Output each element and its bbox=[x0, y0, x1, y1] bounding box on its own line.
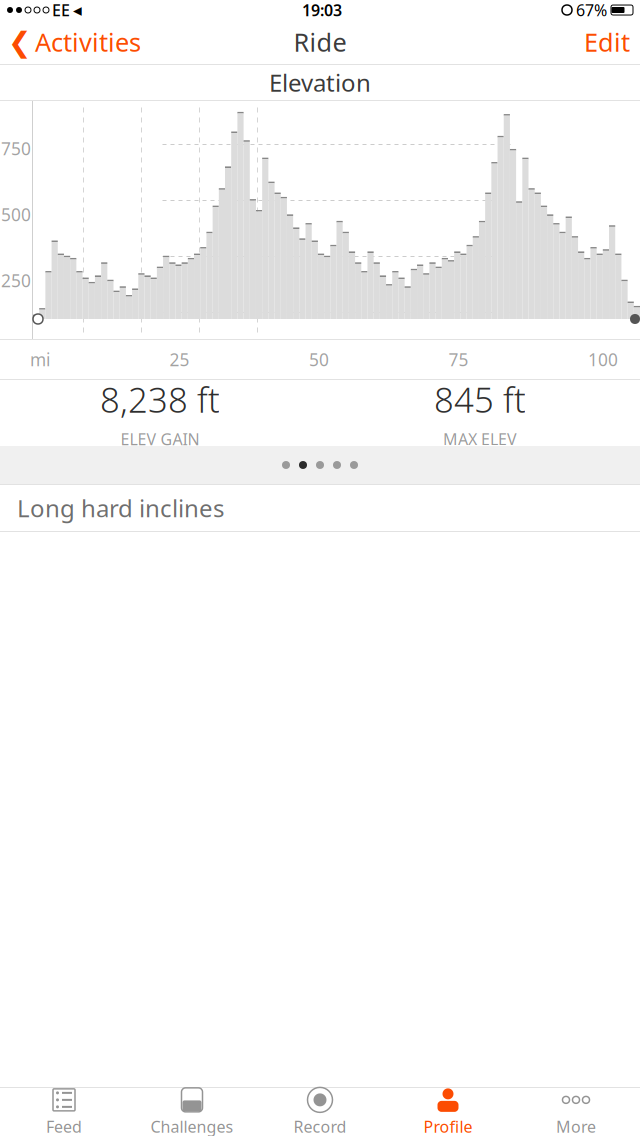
staticText: 750 bbox=[1, 137, 31, 160]
staticText: Elevation bbox=[269, 67, 371, 98]
staticText: MAX ELEV bbox=[443, 428, 517, 450]
staticText: More bbox=[556, 1116, 596, 1136]
staticText: EE bbox=[52, 0, 70, 21]
button[interactable]: Challenges bbox=[128, 1088, 256, 1136]
staticText: 845 ft bbox=[434, 376, 526, 422]
staticText: Profile bbox=[423, 1116, 472, 1136]
staticText: ❮ bbox=[8, 26, 31, 58]
staticText: mi bbox=[30, 348, 50, 371]
button[interactable]: Feed bbox=[0, 1088, 128, 1136]
staticText: Edit bbox=[584, 25, 630, 59]
staticText: 250 bbox=[1, 269, 31, 292]
staticText: Feed bbox=[46, 1116, 82, 1136]
button[interactable]: Record bbox=[256, 1088, 384, 1136]
staticText: Activities bbox=[35, 25, 141, 59]
staticText: Record bbox=[293, 1116, 346, 1136]
staticText: ELEV GAIN bbox=[120, 428, 199, 450]
button[interactable]: Long hard inclines bbox=[0, 484, 640, 531]
button[interactable]: Profile bbox=[384, 1088, 512, 1136]
button[interactable]: More bbox=[512, 1088, 640, 1136]
staticText: Long hard inclines bbox=[17, 492, 224, 524]
staticText: 75 bbox=[448, 348, 468, 371]
staticText: Ride bbox=[293, 25, 346, 59]
staticText: 500 bbox=[1, 203, 31, 226]
staticText: 50 bbox=[309, 348, 329, 371]
staticText: 19:03 bbox=[302, 0, 342, 21]
button[interactable]: Edit bbox=[574, 20, 640, 64]
staticText: 100 bbox=[588, 348, 618, 371]
staticText: ◂ bbox=[73, 0, 82, 20]
staticText: 67% bbox=[576, 0, 607, 21]
button[interactable]: ❮ bbox=[0, 20, 149, 64]
staticText: 25 bbox=[169, 348, 189, 371]
staticText: Challenges bbox=[150, 1116, 233, 1136]
staticText: 8,238 ft bbox=[100, 376, 220, 422]
